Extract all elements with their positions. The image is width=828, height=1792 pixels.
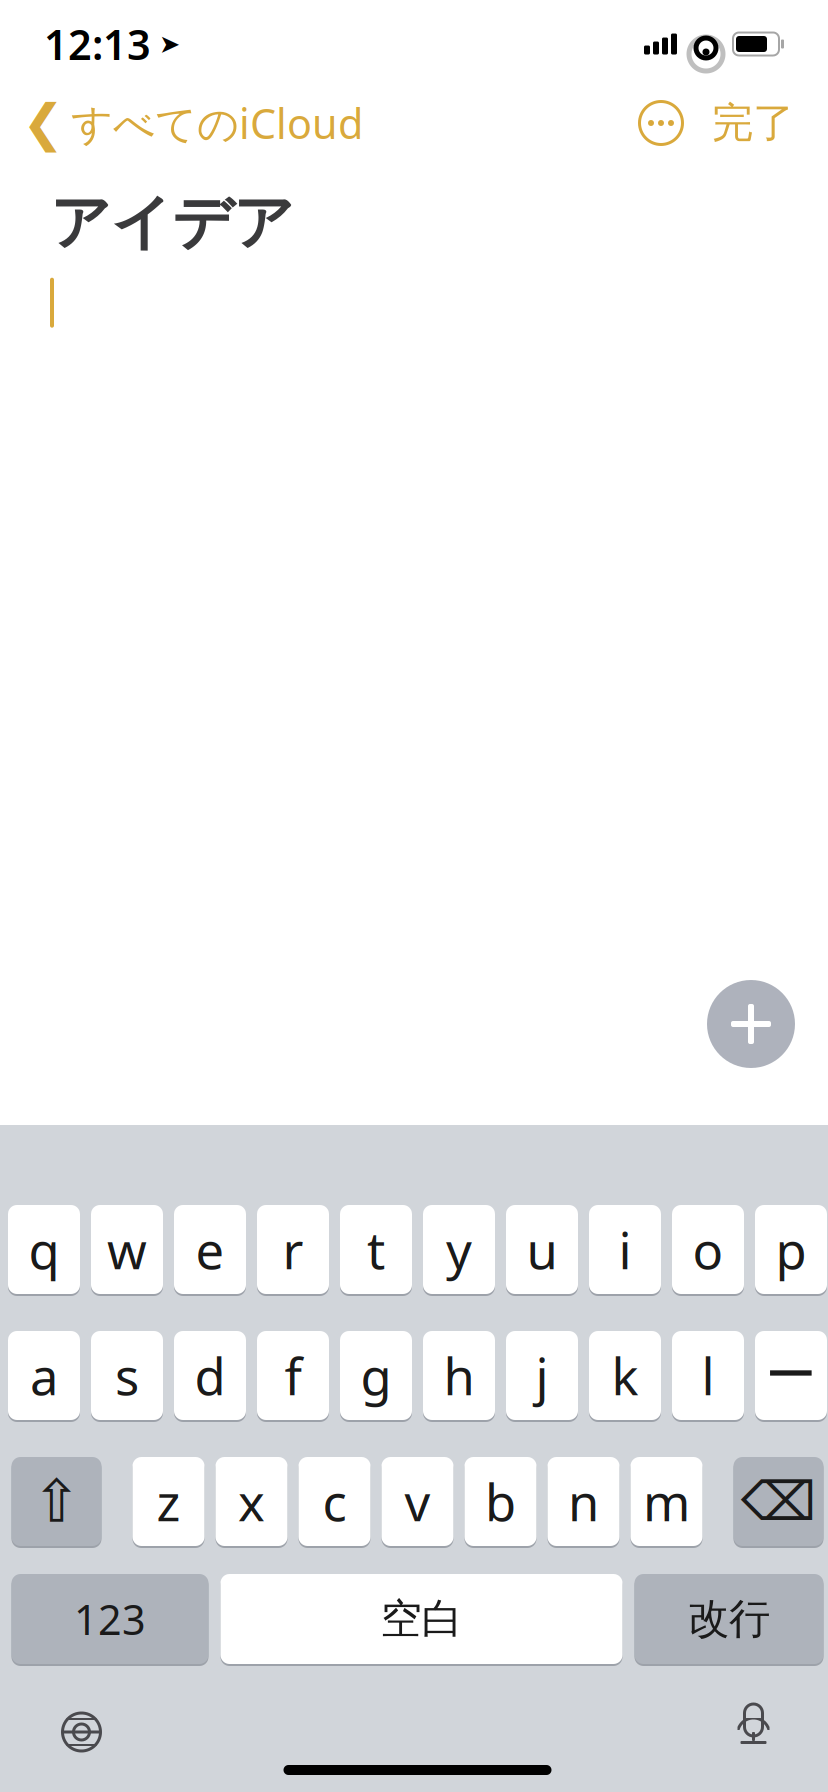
button[interactable]: d — [174, 1329, 246, 1422]
staticText: g — [360, 1342, 391, 1409]
staticText: f — [284, 1342, 301, 1409]
button[interactable]: p — [755, 1203, 827, 1296]
staticText: b — [485, 1468, 516, 1535]
staticText: w — [107, 1216, 147, 1283]
staticText: z — [156, 1468, 180, 1535]
button[interactable]: h — [423, 1329, 495, 1422]
button[interactable]: o — [672, 1203, 744, 1296]
staticText: e — [195, 1216, 224, 1283]
staticText: a — [30, 1342, 58, 1409]
button[interactable]: 改行 — [634, 1572, 823, 1666]
staticText: i — [618, 1216, 631, 1283]
button[interactable]: f — [257, 1329, 329, 1422]
staticText: q — [28, 1216, 59, 1283]
staticText: ⌫ — [741, 1471, 816, 1532]
staticText: l — [701, 1342, 714, 1409]
button[interactable]: ー — [755, 1329, 827, 1422]
staticText: ➤ — [159, 30, 180, 58]
button[interactable]: s — [91, 1329, 163, 1422]
button[interactable]: x — [215, 1455, 287, 1548]
button[interactable]: y — [423, 1203, 495, 1296]
button[interactable]: その他 — [628, 92, 694, 154]
staticText: ⇧ — [32, 1468, 81, 1535]
button[interactable]: l — [672, 1329, 744, 1422]
staticText: 123 — [74, 1592, 146, 1646]
staticText: h — [443, 1342, 474, 1409]
button[interactable]: 追加 — [703, 976, 799, 1072]
button[interactable]: m — [630, 1455, 702, 1548]
staticText: t — [367, 1216, 385, 1283]
staticText: 12:13 — [44, 17, 151, 71]
button[interactable]: i — [589, 1203, 661, 1296]
staticText: x — [238, 1468, 265, 1535]
staticText: j — [535, 1342, 548, 1409]
button[interactable]: 次のキーボード — [58, 1708, 104, 1756]
button[interactable]: r — [257, 1203, 329, 1296]
staticText: u — [526, 1216, 557, 1283]
button[interactable]: k — [589, 1329, 661, 1422]
button[interactable]: t — [340, 1203, 412, 1296]
staticText: k — [611, 1342, 638, 1409]
button[interactable]: 完了 — [694, 88, 812, 158]
button[interactable]: b — [464, 1455, 536, 1548]
staticText: 改行 — [688, 1594, 770, 1644]
staticText: ー — [765, 1344, 816, 1407]
button[interactable]: 123 — [11, 1572, 208, 1666]
button[interactable]: シフト — [11, 1455, 101, 1548]
button[interactable]: v — [381, 1455, 453, 1548]
button[interactable]: ❮ — [0, 84, 363, 162]
staticText: n — [568, 1468, 599, 1535]
button[interactable]: u — [506, 1203, 578, 1296]
staticText: r — [282, 1216, 303, 1283]
staticText: y — [446, 1216, 472, 1283]
button[interactable]: 削除 — [733, 1455, 823, 1548]
staticText: アイデア — [50, 186, 294, 260]
staticText: v — [404, 1468, 430, 1535]
staticText: s — [115, 1342, 139, 1409]
staticText: 完了 — [712, 98, 794, 148]
button[interactable]: e — [174, 1203, 246, 1296]
button[interactable]: n — [547, 1455, 619, 1548]
staticText: o — [692, 1216, 723, 1283]
staticText: p — [775, 1216, 806, 1283]
button[interactable]: z — [132, 1455, 204, 1548]
button[interactable]: j — [506, 1329, 578, 1422]
staticText: すべてのiCloud — [71, 96, 363, 150]
staticText: c — [322, 1468, 346, 1535]
staticText: ❮ — [22, 94, 64, 152]
button[interactable]: c — [298, 1455, 370, 1548]
staticText: d — [194, 1342, 225, 1409]
button[interactable]: 空白 — [220, 1572, 622, 1666]
button[interactable]: q — [8, 1203, 80, 1296]
button[interactable]: w — [91, 1203, 163, 1296]
button[interactable]: g — [340, 1329, 412, 1422]
button[interactable]: a — [8, 1329, 80, 1422]
staticText: m — [643, 1468, 690, 1535]
staticText: 空白 — [380, 1594, 462, 1644]
button[interactable]: 音声入力 — [730, 1708, 776, 1756]
